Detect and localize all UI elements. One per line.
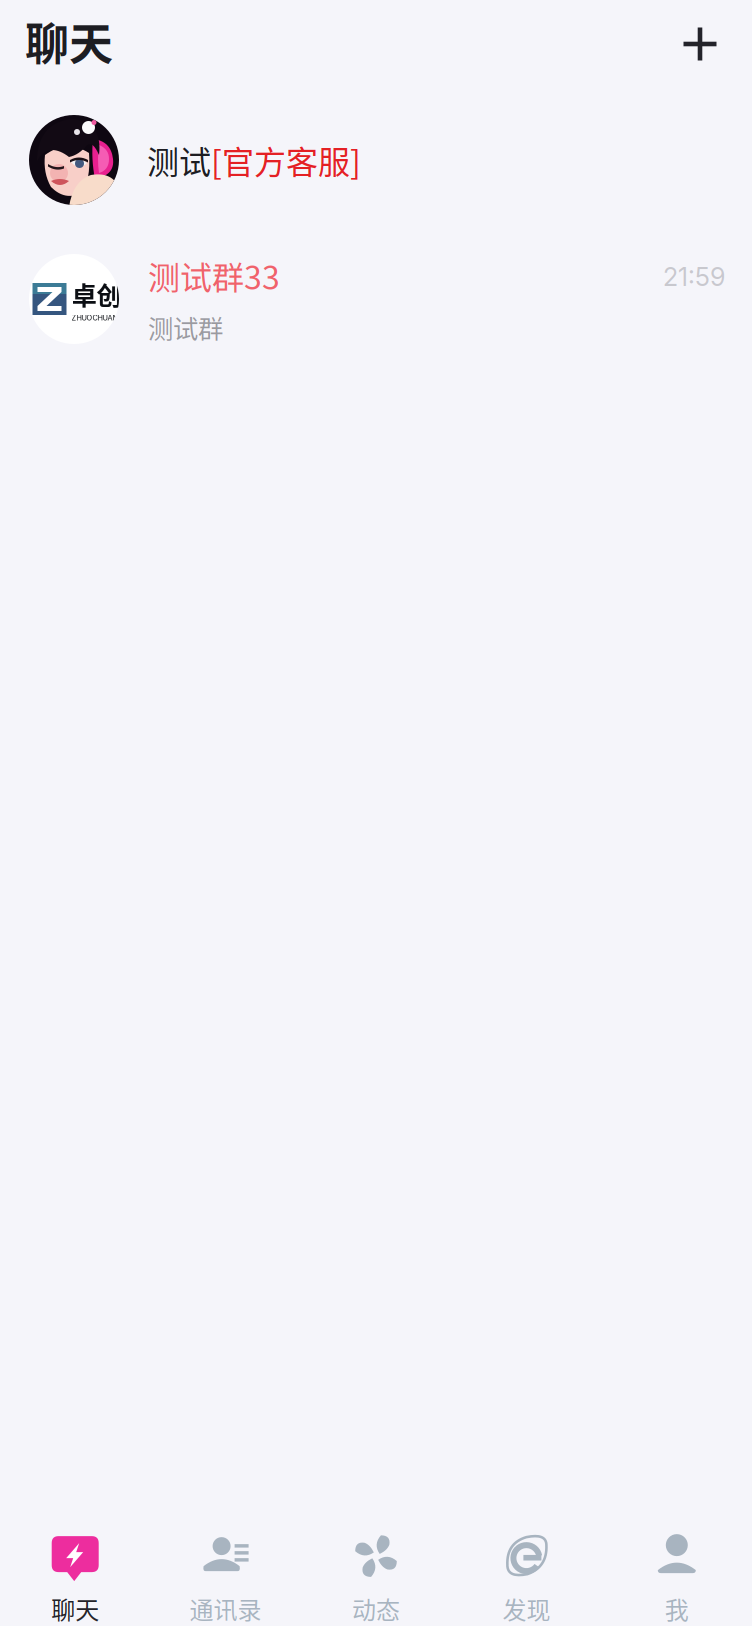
- button[interactable]: 聊天: [0, 1530, 150, 1626]
- button[interactable]: 发现: [451, 1530, 602, 1626]
- staticText: 测试群33: [148, 252, 280, 299]
- button[interactable]: 我: [602, 1530, 752, 1626]
- staticText: 卓创: [71, 276, 121, 312]
- staticText: [官方客服]: [211, 137, 361, 183]
- staticText: 动态: [352, 1591, 400, 1626]
- staticText: 聊天: [25, 9, 113, 73]
- button[interactable]: New chat: [672, 10, 728, 72]
- staticText: 发现: [502, 1591, 550, 1626]
- staticText: 测试群: [148, 309, 223, 345]
- button[interactable]: 通讯录: [150, 1530, 301, 1626]
- button[interactable]: 测试: [0, 82, 752, 238]
- staticText: 我: [665, 1591, 689, 1626]
- staticText: 聊天: [51, 1591, 99, 1626]
- staticText: 21:59: [663, 261, 725, 292]
- staticText: 通讯录: [190, 1591, 262, 1626]
- staticText: 测试: [147, 137, 211, 183]
- button[interactable]: 动态: [301, 1530, 451, 1626]
- button[interactable]: 卓创: [0, 238, 752, 360]
- staticText: ZHUOCHUANG: [71, 313, 123, 322]
